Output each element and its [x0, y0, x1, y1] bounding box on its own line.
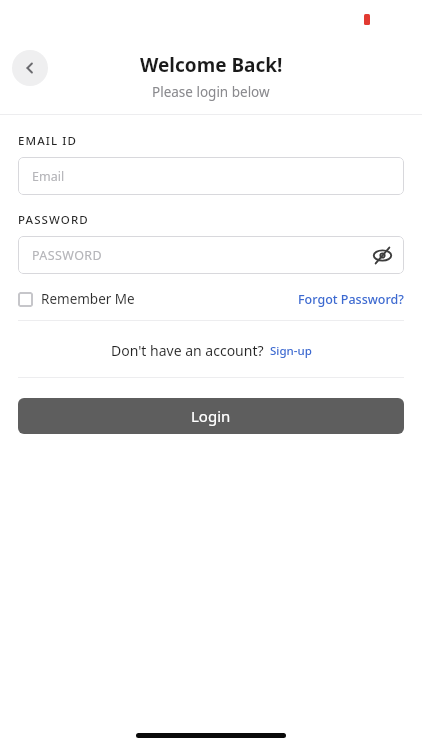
staticText: Don't have an account? — [111, 341, 264, 360]
button[interactable]: Show password — [368, 241, 396, 269]
staticText: Login — [191, 406, 231, 426]
staticText: Please login below — [152, 83, 270, 101]
staticText: Email — [32, 168, 65, 185]
staticText: EMAIL ID — [18, 133, 77, 149]
staticText: Welcome Back! — [140, 52, 283, 78]
staticText: PASSWORD — [18, 212, 89, 228]
button[interactable]: Forgot Password? — [298, 291, 404, 308]
button[interactable]: PASSWORD — [18, 236, 404, 274]
staticText: PASSWORD — [32, 247, 103, 264]
staticText: Forgot Password? — [298, 291, 404, 308]
button[interactable]: Back — [12, 50, 48, 86]
staticText: Remember Me — [41, 290, 135, 308]
button[interactable]: Remember Me — [18, 290, 135, 308]
button[interactable]: Sign-up — [270, 343, 312, 360]
staticText: Sign-up — [270, 343, 312, 359]
button[interactable]: Email — [18, 157, 404, 195]
button[interactable]: Login — [18, 398, 404, 434]
